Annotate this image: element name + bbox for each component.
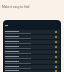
button[interactable]	[4, 55, 60, 59]
button[interactable]	[4, 60, 60, 64]
button[interactable]	[4, 70, 60, 72]
button[interactable]	[4, 35, 60, 39]
staticText: Make it easy to find	[2, 5, 30, 9]
button[interactable]	[4, 40, 60, 44]
button[interactable]	[4, 30, 60, 34]
button[interactable]	[4, 45, 60, 49]
button[interactable]	[4, 65, 60, 69]
button[interactable]	[4, 50, 60, 54]
